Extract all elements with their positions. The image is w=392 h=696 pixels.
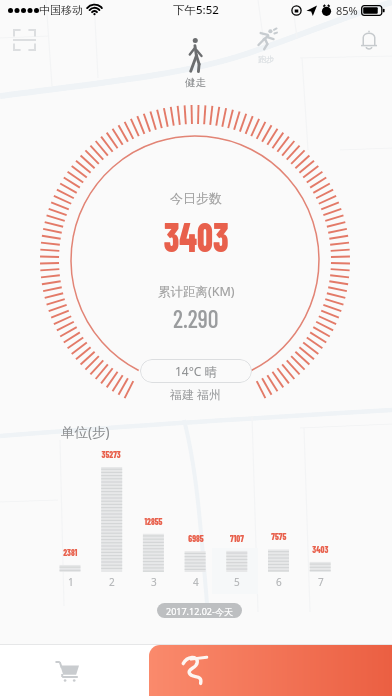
staticText: 福建 福州 xyxy=(170,386,222,402)
staticText: 跑步 xyxy=(258,54,274,64)
button[interactable]: Shop xyxy=(49,653,85,689)
staticText: 14°C 晴 xyxy=(175,363,217,379)
staticText: 健走 xyxy=(185,76,206,89)
staticText: 3403 xyxy=(312,543,329,555)
button[interactable]: 14°C 晴 xyxy=(140,359,252,383)
staticText: 2 xyxy=(109,575,115,589)
staticText: 4 xyxy=(193,575,199,589)
button[interactable]: 跑步 xyxy=(245,28,287,64)
staticText: 7 xyxy=(318,575,324,589)
staticText: 累计距离(KM) xyxy=(158,283,235,300)
button[interactable]: Start workout xyxy=(149,645,392,696)
staticText: 5 xyxy=(234,575,240,589)
staticText: 2.290 xyxy=(173,304,219,333)
staticText: 7575 xyxy=(271,530,287,542)
staticText: 6985 xyxy=(188,532,204,544)
staticText: 1 xyxy=(68,575,74,589)
staticText: 7107 xyxy=(230,532,244,544)
button[interactable]: Scan code xyxy=(6,22,42,58)
staticText: 2381 xyxy=(63,546,78,558)
staticText: 中国移动 xyxy=(39,3,83,17)
staticText: 今日步数 xyxy=(170,190,222,206)
staticText: 35273 xyxy=(102,448,121,460)
staticText: 单位(步) xyxy=(61,423,110,441)
staticText: 6 xyxy=(276,575,282,589)
button[interactable]: Notifications xyxy=(352,22,386,56)
staticText: 下午5:52 xyxy=(173,2,219,18)
staticText: 3 xyxy=(151,575,157,589)
staticText: 12855 xyxy=(144,515,163,527)
staticText: 85% xyxy=(336,3,358,18)
staticText: 2017.12.02-今天 xyxy=(166,605,233,617)
staticText: 3403 xyxy=(164,211,229,260)
button[interactable]: 健走 xyxy=(175,36,216,89)
button[interactable]: 2017.12.02-今天 xyxy=(157,603,242,618)
